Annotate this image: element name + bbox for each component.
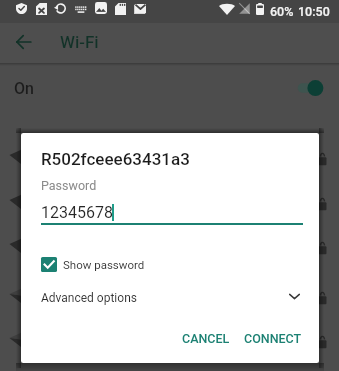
staticText: R502fceee63431a3	[41, 149, 190, 169]
staticText: 10:50	[298, 4, 330, 19]
staticText: On	[14, 79, 34, 98]
staticText: Advanced options	[41, 291, 137, 305]
button[interactable]: Advanced options	[21, 285, 319, 313]
staticText: Password	[41, 178, 97, 193]
staticText: CONNECT	[244, 331, 302, 346]
staticText: 12345678	[41, 203, 113, 222]
button[interactable]	[0, 272, 339, 316]
button[interactable]: CANCEL	[174, 323, 238, 353]
staticText: Wi-Fi	[60, 32, 99, 52]
button[interactable]	[0, 178, 339, 222]
button[interactable]	[0, 222, 339, 266]
button[interactable]	[0, 316, 339, 360]
button[interactable]: Show password	[41, 251, 145, 277]
button[interactable]	[0, 133, 339, 177]
staticText: Show password	[63, 258, 145, 271]
staticText: CANCEL	[182, 331, 230, 346]
button[interactable]: CONNECT	[236, 323, 310, 353]
button[interactable]: On	[0, 64, 339, 114]
staticText: 60%	[270, 4, 294, 19]
button[interactable]: Navigate up	[9, 28, 37, 56]
